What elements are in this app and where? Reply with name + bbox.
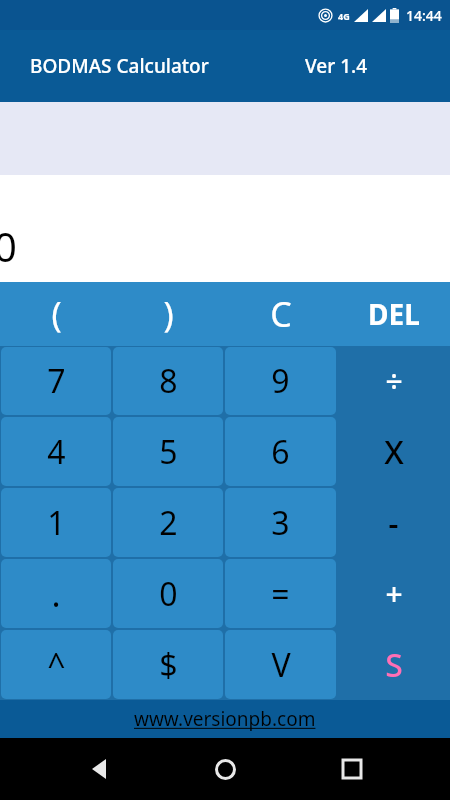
button[interactable]: (: [0, 282, 112, 346]
button[interactable]: +: [337, 558, 450, 629]
button[interactable]: C: [224, 282, 337, 346]
button[interactable]: 7: [1, 347, 111, 415]
staticText: 0: [0, 219, 17, 273]
staticText: C: [270, 291, 292, 337]
button[interactable]: -: [337, 487, 450, 558]
button[interactable]: 5: [113, 417, 223, 486]
button[interactable]: 2: [113, 488, 223, 557]
staticText: 4G: [338, 10, 350, 22]
button[interactable]: 0: [113, 559, 223, 628]
staticText: 6: [271, 430, 290, 474]
staticText: DEL: [368, 295, 420, 333]
button[interactable]: 4: [1, 417, 111, 486]
staticText: 7: [47, 359, 66, 403]
staticText: www.versionpb.com: [134, 706, 316, 732]
staticText: $: [159, 643, 178, 687]
button[interactable]: 3: [225, 488, 336, 557]
button[interactable]: ^: [1, 630, 111, 699]
staticText: ^: [47, 643, 66, 687]
button[interactable]: X: [337, 416, 450, 487]
button[interactable]: 6: [225, 417, 336, 486]
staticText: +: [385, 573, 403, 614]
staticText: 2: [159, 501, 178, 545]
staticText: -: [388, 501, 399, 545]
staticText: 1: [47, 501, 66, 545]
button[interactable]: ): [112, 282, 224, 346]
button[interactable]: .: [1, 559, 111, 628]
button[interactable]: $: [113, 630, 223, 699]
staticText: 5: [159, 430, 178, 474]
button[interactable]: 9: [225, 347, 336, 415]
staticText: 0: [159, 572, 178, 616]
button[interactable]: DEL: [337, 282, 450, 346]
staticText: BODMAS Calculator: [30, 53, 209, 79]
button[interactable]: 1: [1, 488, 111, 557]
button[interactable]: Back: [71, 741, 127, 797]
button[interactable]: V: [225, 630, 336, 699]
staticText: 9: [271, 359, 290, 403]
staticText: 8: [159, 359, 178, 403]
staticText: V: [271, 643, 291, 687]
button[interactable]: Home: [197, 741, 253, 797]
button[interactable]: 8: [113, 347, 223, 415]
staticText: X: [384, 430, 404, 474]
staticText: 3: [271, 501, 290, 545]
staticText: 14:44: [406, 6, 442, 25]
button[interactable]: ÷: [337, 346, 450, 416]
staticText: ÷: [385, 361, 403, 402]
button[interactable]: =: [225, 559, 336, 628]
staticText: .: [51, 571, 61, 617]
staticText: ): [163, 291, 174, 337]
staticText: 4: [47, 430, 66, 474]
staticText: (: [51, 291, 62, 337]
button[interactable]: www.versionpb.com: [0, 700, 450, 738]
staticText: S: [385, 643, 403, 687]
staticText: Ver 1.4: [305, 53, 368, 79]
button[interactable]: S: [337, 629, 450, 700]
button[interactable]: Recent apps: [324, 741, 380, 797]
staticText: =: [271, 572, 290, 616]
